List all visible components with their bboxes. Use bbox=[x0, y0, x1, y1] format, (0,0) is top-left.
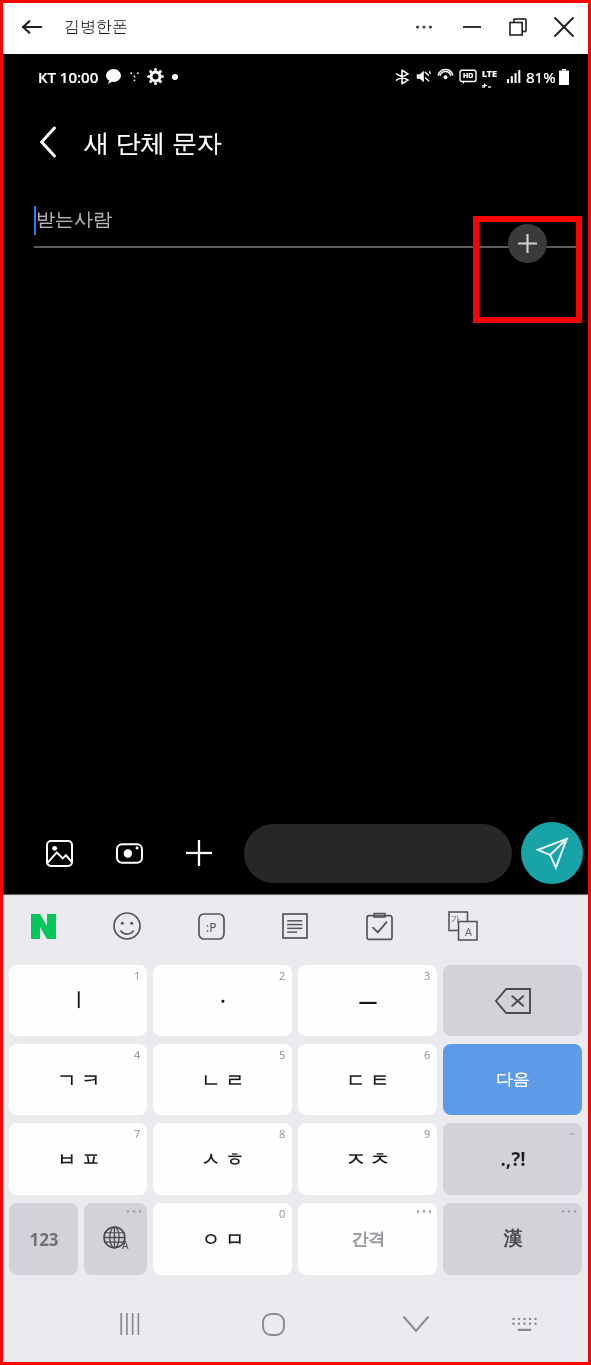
button[interactable]: 간격 bbox=[298, 1203, 437, 1275]
staticText: LTE+ bbox=[482, 67, 502, 87]
staticText: 받는사람 bbox=[36, 208, 112, 232]
button[interactable]: Naver bbox=[22, 905, 64, 947]
button[interactable]: Clipboard bbox=[358, 905, 400, 947]
staticText: ㅂ ㅍ bbox=[57, 1146, 100, 1172]
staticText: KT 10:00 bbox=[38, 67, 99, 87]
button[interactable]: Hide keyboard bbox=[390, 1298, 442, 1350]
staticText: ㅅ ㅎ bbox=[201, 1146, 244, 1172]
button[interactable]: Change language bbox=[84, 1203, 147, 1275]
button[interactable]: Text templates bbox=[274, 905, 316, 947]
button[interactable]: Send bbox=[521, 822, 583, 884]
staticText: HD bbox=[463, 71, 474, 81]
staticText: .,?! bbox=[500, 1146, 526, 1172]
staticText: 다음 bbox=[496, 1069, 530, 1090]
staticText: 6 bbox=[424, 1047, 431, 1062]
staticText: ~ bbox=[569, 1126, 576, 1141]
button[interactable]: 123 bbox=[9, 1203, 78, 1275]
button[interactable]: Back bbox=[26, 120, 70, 164]
staticText: 새 단체 문자 bbox=[84, 125, 223, 159]
staticText: 5 bbox=[279, 1047, 286, 1062]
button[interactable]: ㄴ ㄹ bbox=[153, 1044, 292, 1115]
button[interactable]: Minimize bbox=[453, 8, 491, 46]
staticText: 김병한폰 bbox=[64, 17, 128, 37]
button[interactable]: Home bbox=[247, 1298, 299, 1350]
button[interactable]: Back bbox=[12, 7, 52, 47]
button[interactable]: Recents bbox=[104, 1298, 156, 1350]
button[interactable]: — bbox=[298, 965, 437, 1036]
button[interactable]: Camera bbox=[106, 830, 152, 876]
button[interactable]: 받는사람 bbox=[34, 184, 471, 256]
button[interactable]: · bbox=[153, 965, 292, 1036]
button[interactable]: Emoticons bbox=[190, 905, 232, 947]
staticText: :P bbox=[206, 919, 217, 935]
staticText: ㄱ ㅋ bbox=[57, 1067, 100, 1093]
staticText: A bbox=[465, 924, 473, 939]
staticText: · bbox=[220, 988, 226, 1014]
button[interactable]: Switch keyboard bbox=[498, 1298, 550, 1350]
button[interactable]: Backspace bbox=[443, 965, 582, 1036]
button[interactable]: ㅣ bbox=[9, 965, 147, 1036]
staticText: 81% bbox=[526, 67, 556, 87]
button[interactable]: Add recipient bbox=[500, 216, 555, 271]
button[interactable]: 다음 bbox=[443, 1044, 582, 1115]
staticText: ㅣ bbox=[69, 989, 88, 1013]
staticText: 4 bbox=[134, 1047, 141, 1062]
staticText: 2 bbox=[279, 968, 286, 983]
staticText: 8 bbox=[279, 1126, 286, 1141]
button[interactable] bbox=[244, 824, 512, 883]
staticText: ㅈ ㅊ bbox=[346, 1146, 389, 1172]
staticText: 3 bbox=[424, 968, 431, 983]
button[interactable]: Close bbox=[545, 8, 583, 46]
staticText: 漢 bbox=[503, 1227, 522, 1251]
staticText: — bbox=[358, 988, 378, 1014]
staticText: ㄴ ㄹ bbox=[201, 1067, 244, 1093]
staticText: 123 bbox=[29, 1228, 59, 1251]
button[interactable]: Emoji bbox=[106, 905, 148, 947]
button[interactable]: ㄷ ㅌ bbox=[298, 1044, 437, 1115]
button[interactable]: ㄱ ㅋ bbox=[9, 1044, 147, 1115]
staticText: ㄷ ㅌ bbox=[346, 1067, 389, 1093]
staticText: 1 bbox=[134, 968, 141, 983]
staticText: 간격 bbox=[351, 1229, 385, 1250]
button[interactable]: More attachments bbox=[176, 830, 222, 876]
staticText: ㅇ ㅁ bbox=[201, 1226, 244, 1252]
button[interactable]: More options bbox=[405, 8, 443, 46]
staticText: 가 bbox=[451, 913, 460, 924]
button[interactable]: .,?! bbox=[443, 1123, 582, 1195]
staticText: 0 bbox=[279, 1206, 286, 1221]
button[interactable]: ㅂ ㅍ bbox=[9, 1123, 147, 1195]
button[interactable]: ㅇ ㅁ bbox=[153, 1203, 292, 1275]
staticText: 9 bbox=[424, 1126, 431, 1141]
button[interactable]: ㅅ ㅎ bbox=[153, 1123, 292, 1195]
button[interactable]: 漢 bbox=[443, 1203, 582, 1275]
button[interactable]: Gallery bbox=[36, 830, 82, 876]
staticText: A bbox=[122, 1238, 129, 1252]
button[interactable]: Restore bbox=[499, 8, 537, 46]
button[interactable]: Translate bbox=[442, 905, 484, 947]
staticText: 7 bbox=[134, 1126, 141, 1141]
button[interactable]: ㅈ ㅊ bbox=[298, 1123, 437, 1195]
